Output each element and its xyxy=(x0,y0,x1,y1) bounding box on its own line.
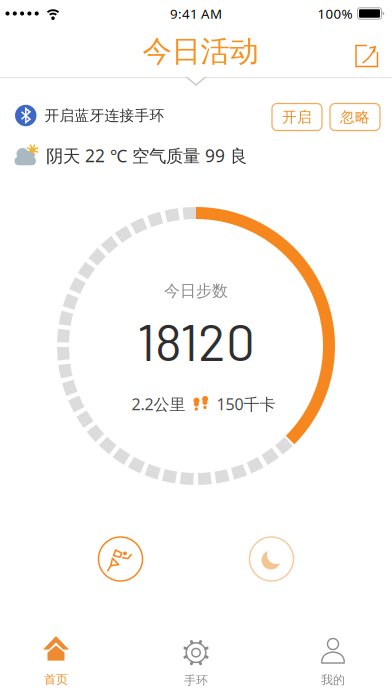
button[interactable] xyxy=(249,537,293,581)
staticText: 手环 xyxy=(184,673,208,688)
staticText: 首页 xyxy=(44,672,68,687)
staticText: 开启蓝牙连接手环 xyxy=(44,106,164,124)
button[interactable]: 首页 xyxy=(6,630,106,692)
staticText: 开启 xyxy=(282,108,312,126)
button[interactable]: 我的 xyxy=(283,631,383,693)
button[interactable] xyxy=(352,41,382,71)
staticText: 18120 xyxy=(137,310,255,371)
staticText: 今日步数 xyxy=(164,281,228,301)
staticText: 2.2公里 xyxy=(131,393,185,415)
button[interactable]: 手环 xyxy=(146,632,246,694)
staticText: 9:41 AM xyxy=(170,5,222,22)
button[interactable] xyxy=(98,537,142,581)
button[interactable]: 忽略 xyxy=(330,103,380,130)
staticText: 我的 xyxy=(321,673,345,687)
staticText: 阴天 22 ℃ 空气质量 99 良 xyxy=(46,144,247,167)
staticText: 150千卡 xyxy=(216,393,275,415)
staticText: 100% xyxy=(317,5,352,22)
button[interactable]: 今日活动 xyxy=(142,33,258,69)
staticText: 忽略 xyxy=(340,108,370,126)
button[interactable]: 开启 xyxy=(272,103,322,130)
staticText: 今日活动 xyxy=(142,33,258,69)
